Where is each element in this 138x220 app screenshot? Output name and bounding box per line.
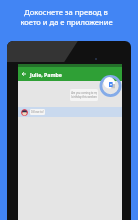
staticText: birthday this weekend?: [71, 95, 97, 99]
button[interactable]: Back: [18, 67, 122, 81]
staticText: I'd love to!: [31, 110, 44, 114]
staticText: Докоснете за превод в: [24, 7, 108, 17]
button[interactable]: Translate: [104, 77, 115, 88]
other: Back: [22, 72, 26, 76]
staticText: което и да е приложение: [20, 17, 113, 27]
staticText: Are you coming to my: [71, 91, 97, 95]
staticText: Julie, Pambe: [30, 71, 62, 78]
